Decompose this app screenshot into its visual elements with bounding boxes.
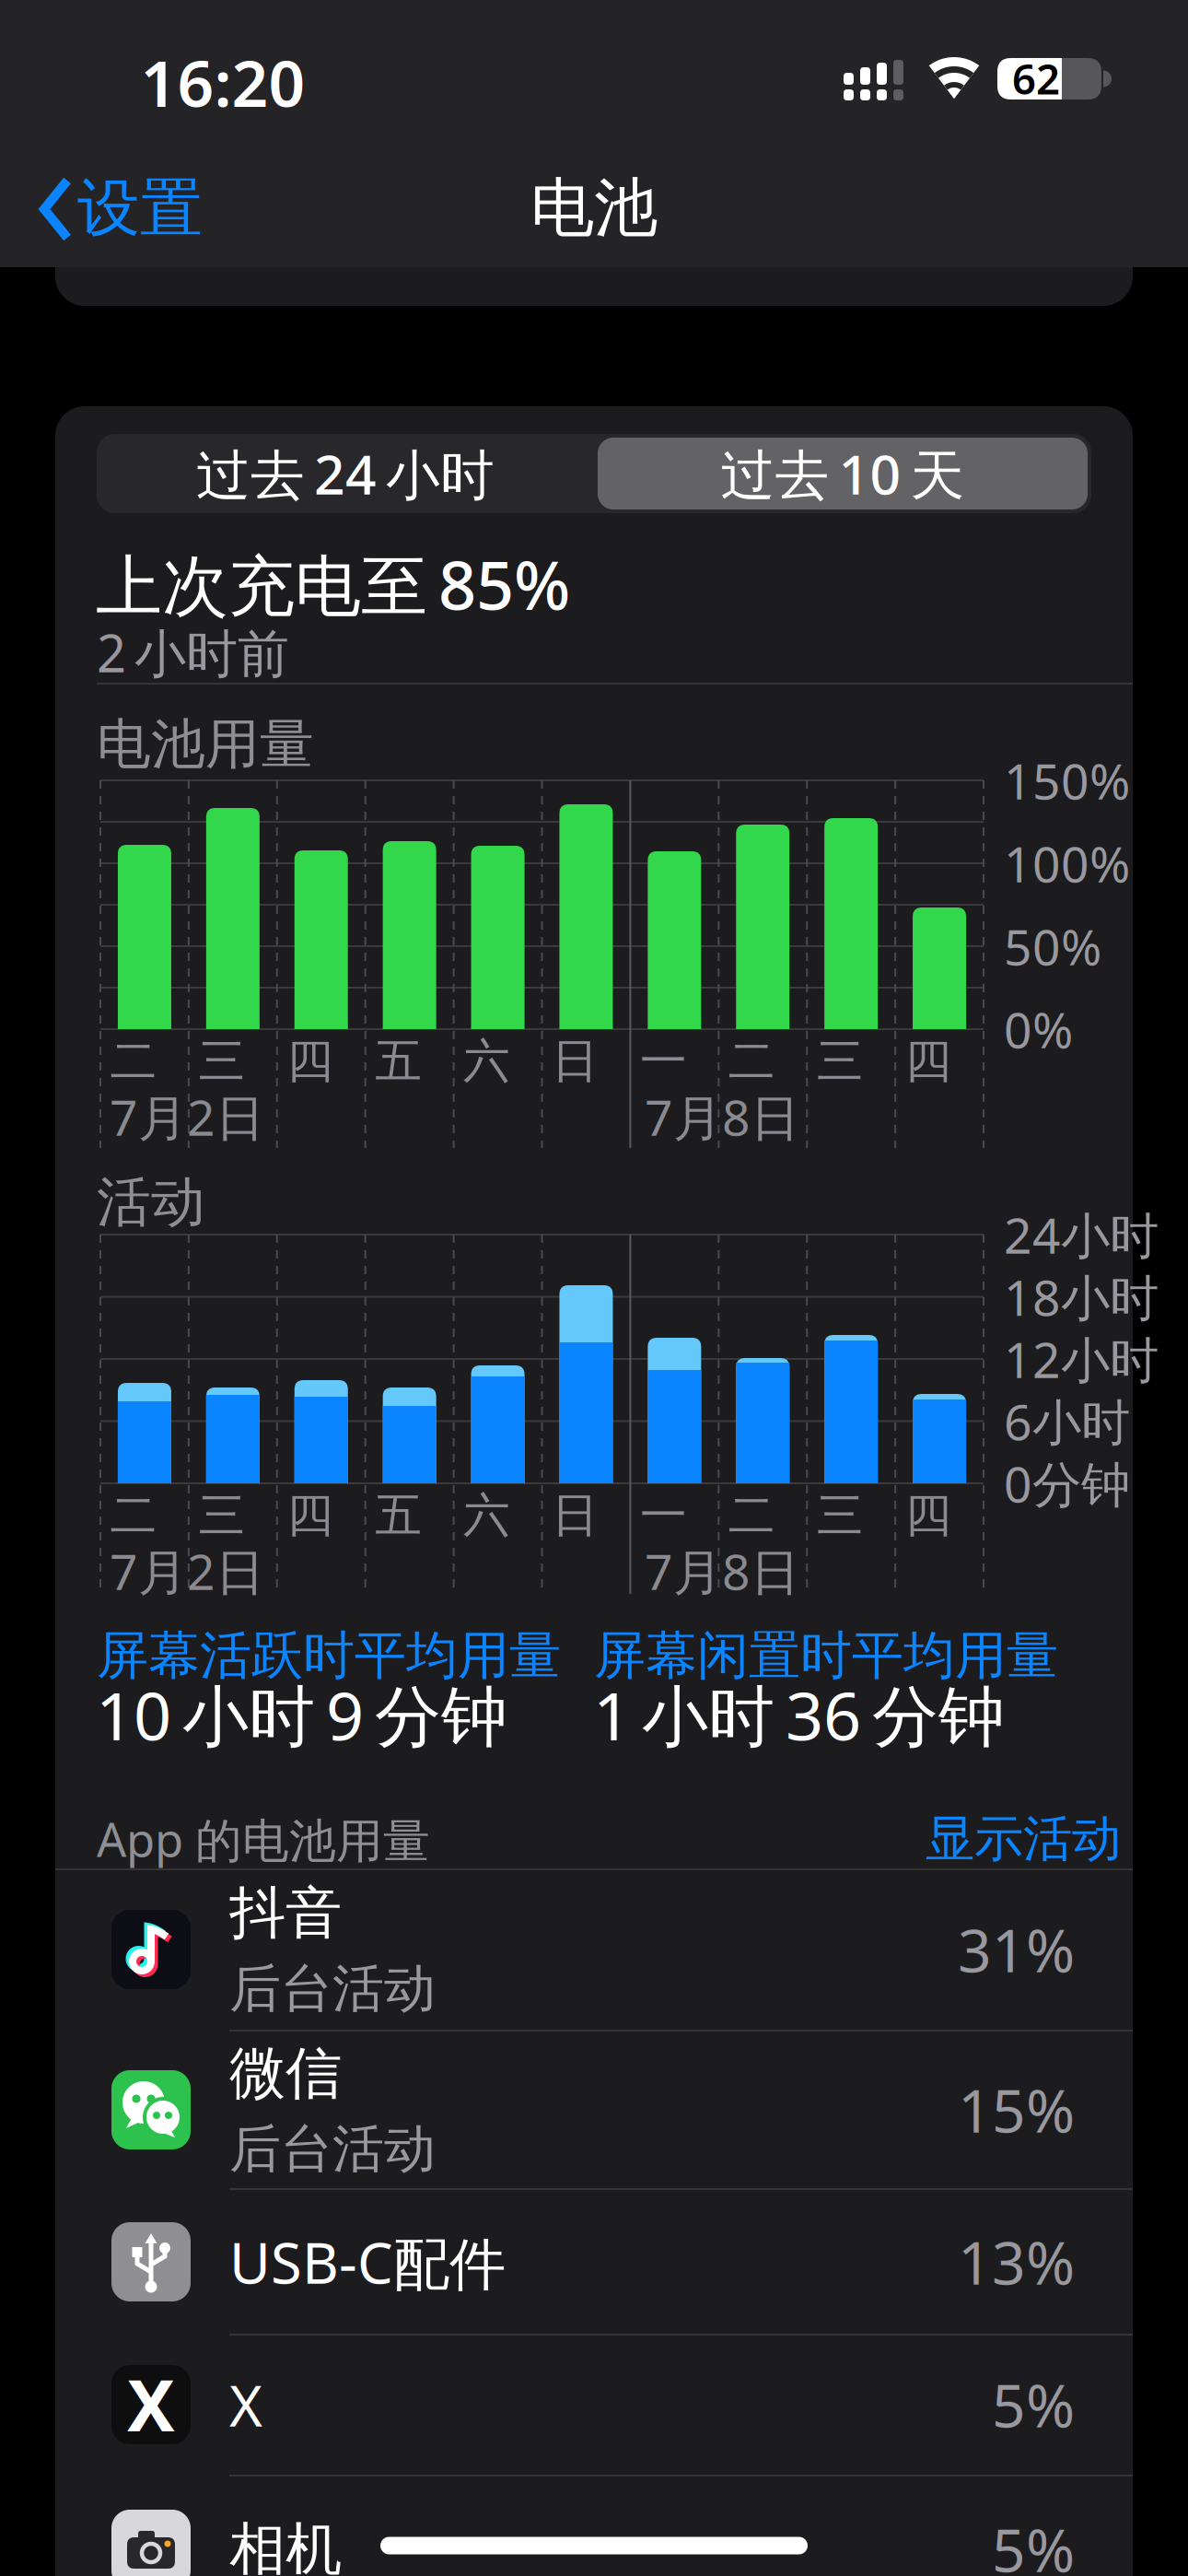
staticText: 1 小时 36 分钟: [593, 1671, 1005, 1759]
staticText: 六: [463, 1033, 510, 1090]
button[interactable]: [598, 438, 1088, 509]
staticText: 二: [728, 1487, 775, 1544]
staticText: 7月2日: [110, 1084, 264, 1149]
button[interactable]: 微信: [55, 2032, 1133, 2188]
staticText: 相机: [229, 2515, 342, 2576]
staticText: 四: [905, 1487, 952, 1544]
staticText: 四: [905, 1033, 952, 1090]
staticText: 三: [817, 1033, 864, 1090]
staticText: 上次充电至 85%: [96, 540, 570, 628]
staticText: 屏幕活跃时平均用量: [97, 1624, 561, 1687]
staticText: 电池: [530, 169, 658, 247]
staticText: 五: [375, 1033, 422, 1090]
button[interactable]: 相机: [55, 2476, 1133, 2576]
staticText: 15%: [958, 2071, 1075, 2149]
staticText: 五: [375, 1487, 422, 1544]
button[interactable]: USB-C配件: [55, 2190, 1133, 2334]
staticText: 四: [287, 1487, 334, 1544]
staticText: 一: [640, 1487, 687, 1544]
staticText: 六: [463, 1487, 510, 1544]
staticText: 过去 24 小时: [196, 438, 495, 509]
staticText: 5%: [992, 2510, 1075, 2576]
staticText: 5%: [992, 2365, 1075, 2444]
staticText: 日: [552, 1033, 599, 1090]
staticText: 三: [198, 1033, 245, 1090]
staticText: 后台活动: [229, 2117, 436, 2181]
staticText: 电池用量: [97, 711, 314, 778]
staticText: 150%: [1004, 748, 1130, 813]
staticText: 一: [640, 1033, 687, 1090]
staticText: 二: [110, 1033, 157, 1090]
staticText: USB-C配件: [229, 2224, 506, 2300]
staticText: 日: [552, 1487, 599, 1544]
staticText: 7月2日: [110, 1538, 264, 1603]
staticText: 三: [817, 1487, 864, 1544]
staticText: 24小时: [1004, 1202, 1159, 1267]
staticText: X: [127, 2356, 175, 2451]
staticText: 抖音: [229, 1878, 342, 1948]
staticText: 屏幕闲置时平均用量: [594, 1624, 1058, 1687]
staticText: 三: [198, 1487, 245, 1544]
staticText: 12小时: [1004, 1326, 1159, 1392]
staticText: 活动: [97, 1169, 205, 1236]
staticText: 四: [287, 1033, 334, 1090]
staticText: 后台活动: [229, 1957, 436, 2021]
staticText: 0%: [1004, 996, 1073, 1062]
staticText: 二: [728, 1033, 775, 1090]
button[interactable]: 过去 24 小时: [97, 434, 594, 513]
staticText: 50%: [1004, 914, 1101, 979]
button[interactable]: 显示活动: [926, 1809, 1121, 1869]
button[interactable]: X: [55, 2335, 1133, 2474]
staticText: 62: [1012, 51, 1060, 106]
staticText: 16:20: [140, 40, 305, 124]
staticText: 过去 10 天: [721, 438, 965, 509]
staticText: 二: [110, 1487, 157, 1544]
staticText: 设置: [77, 170, 203, 247]
staticText: 微信: [229, 2039, 342, 2108]
staticText: 100%: [1004, 831, 1130, 896]
button[interactable]: 设置: [77, 170, 203, 247]
staticText: 2 小时前: [97, 618, 289, 687]
staticText: 7月8日: [645, 1538, 799, 1603]
staticText: 0分钟: [1004, 1451, 1130, 1516]
staticText: 显示活动: [926, 1809, 1121, 1869]
staticText: 6小时: [1004, 1389, 1130, 1454]
staticText: X: [229, 2367, 262, 2442]
staticText: 10 小时 9 分钟: [96, 1671, 507, 1759]
staticText: App 的电池用量: [97, 1808, 430, 1870]
button[interactable]: 抖音: [55, 1869, 1133, 2030]
staticText: 7月8日: [645, 1084, 799, 1149]
staticText: 13%: [958, 2223, 1075, 2301]
staticText: 31%: [958, 1910, 1075, 1989]
staticText: 18小时: [1004, 1264, 1159, 1329]
